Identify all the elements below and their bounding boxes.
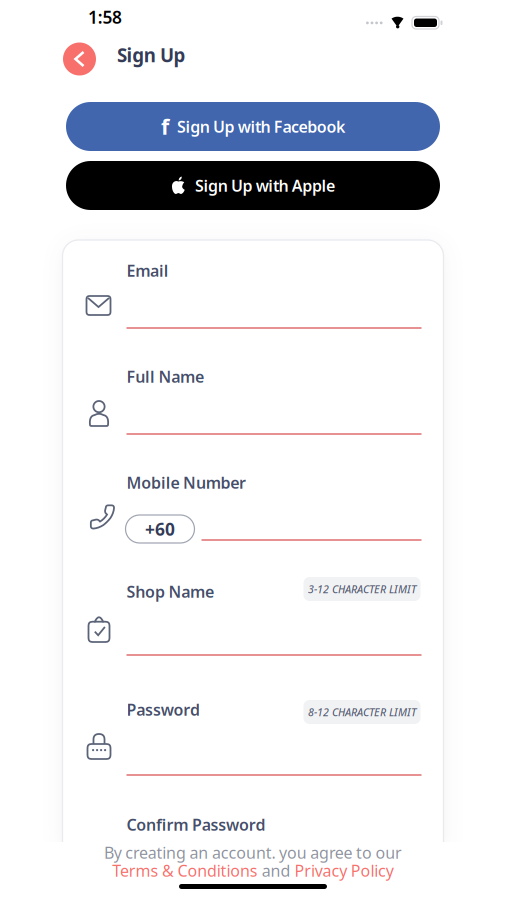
button[interactable]: Privacy Policy: [294, 860, 394, 881]
button[interactable]: f: [66, 102, 440, 151]
staticText: 3-12 CHARACTER LIMIT: [308, 582, 416, 596]
staticText: Email: [126, 260, 169, 281]
button[interactable]: Sign Up with Apple: [66, 161, 440, 210]
staticText: 8-12 CHARACTER LIMIT: [308, 705, 416, 719]
button[interactable]: Back: [63, 42, 96, 75]
staticText: f: [161, 112, 169, 141]
staticText: Sign Up: [117, 43, 186, 67]
staticText: Sign Up with Apple: [195, 175, 335, 196]
staticText: By creating an account. you agree to our: [104, 842, 402, 863]
staticText: 1:58: [88, 5, 122, 28]
staticText: Confirm Password: [126, 814, 265, 835]
staticText: Terms & Conditions: [112, 860, 258, 881]
button[interactable]: +60: [125, 515, 194, 543]
staticText: Privacy Policy: [294, 860, 394, 881]
staticText: Sign Up with Facebook: [177, 116, 345, 137]
staticText: Shop Name: [126, 581, 214, 602]
button[interactable]: Terms & Conditions: [112, 860, 258, 881]
staticText: Mobile Number: [126, 472, 246, 493]
staticText: Full Name: [126, 366, 204, 387]
staticText: +60: [145, 517, 175, 540]
staticText: Password: [126, 699, 200, 720]
staticText: and: [262, 860, 290, 881]
